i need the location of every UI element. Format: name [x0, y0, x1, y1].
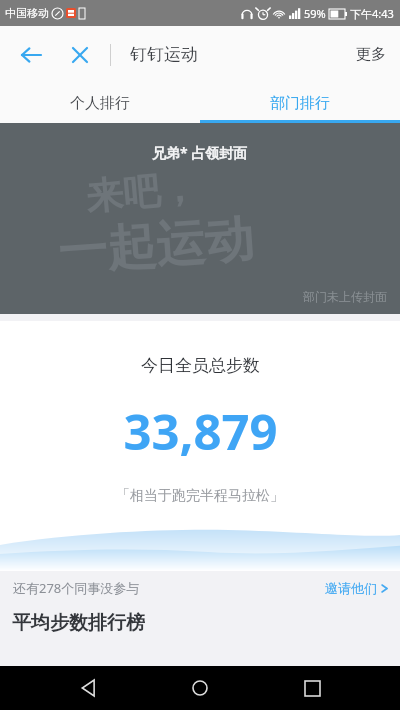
staticText: 部门未上传封面	[303, 289, 387, 304]
staticText: 33,879	[123, 398, 278, 465]
button[interactable]: 更多	[342, 35, 400, 74]
staticText: 部门排行	[270, 94, 330, 113]
staticText: 59%	[304, 6, 326, 21]
staticText: 中国移动	[5, 6, 49, 20]
button[interactable]: 个人排行	[0, 83, 200, 123]
button[interactable]: Back	[66, 666, 112, 710]
staticText: 邀请他们	[325, 580, 377, 596]
staticText: 更多	[356, 45, 386, 64]
staticText: 下午4:43	[350, 6, 394, 21]
button[interactable]: 还有278个同事没参与	[0, 571, 400, 605]
button[interactable]: Home	[177, 666, 223, 710]
staticText: 「相当于跑完半程马拉松」	[116, 487, 284, 505]
staticText: 钉钉运动	[130, 44, 198, 65]
button[interactable]: Close	[64, 39, 96, 71]
staticText: 一起运动	[56, 208, 256, 284]
staticText: 来吧，	[84, 164, 199, 221]
staticText: 还有278个同事没参与	[13, 579, 140, 597]
staticText: 兄弟* 占领封面	[152, 143, 248, 162]
staticText: 平均步数排行榜	[12, 611, 145, 635]
button[interactable]: 部门排行	[200, 83, 400, 123]
staticText: 今日全员总步数	[141, 355, 260, 376]
button[interactable]: Recents	[289, 666, 335, 710]
staticText: 个人排行	[70, 94, 130, 113]
button[interactable]: Back	[14, 38, 48, 72]
button[interactable]: 兄弟* 占领封面	[0, 123, 400, 314]
